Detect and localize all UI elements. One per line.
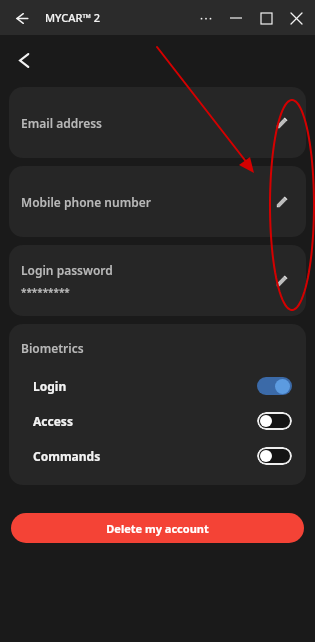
staticText: Access [33,413,73,429]
button[interactable]: Edit mobile phone number [266,187,296,217]
staticText: Mobile phone number [21,194,151,210]
staticText: Login password [21,262,113,278]
button[interactable]: Login [9,368,306,403]
button[interactable]: Edit email address [266,108,296,138]
button[interactable]: Delete my account [11,513,304,543]
staticText: Biometrics [21,340,84,356]
button[interactable]: Mobile phone number [9,166,306,237]
button[interactable]: Maximize [251,3,281,33]
button[interactable]: Email address [9,87,306,158]
button[interactable]: Commands [9,438,306,473]
staticText: Email address [21,115,103,131]
staticText: Delete my account [106,521,209,536]
button[interactable]: Close [281,3,311,33]
button[interactable]: Login password [9,245,306,316]
staticText: MYCAR™ 2 [45,10,101,25]
button[interactable]: Access [9,403,306,438]
staticText: Login [33,378,67,394]
button[interactable]: More options [191,3,221,33]
staticText: ********* [21,285,70,299]
button[interactable]: Navigate back [8,44,40,76]
button[interactable]: Minimize [221,3,251,33]
button[interactable]: Back [8,5,34,31]
staticText: Commands [33,448,101,464]
button[interactable]: Edit login password [266,266,296,296]
